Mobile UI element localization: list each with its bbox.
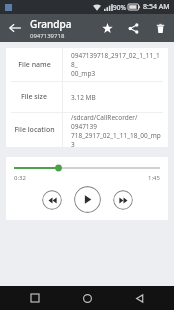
staticText: 0947139718 [30,32,65,40]
button[interactable]: Favorite [94,14,120,42]
staticText: 8:54 AM [143,2,170,12]
staticText: 0:32 [14,174,26,182]
button[interactable]: Back [0,14,30,42]
staticText: 1:45 [148,174,160,182]
staticText: File name [18,60,51,70]
button[interactable]: Play [74,186,101,213]
button[interactable]: Recents [18,286,52,310]
button[interactable]: Share [120,14,146,42]
staticText: Grandpa [30,17,72,31]
staticText: 90% [113,3,126,12]
button[interactable]: Seek bar [14,164,160,172]
button[interactable]: Rewind [42,190,62,210]
staticText: File size [21,92,47,102]
staticText: /sdcard/CallRecorder/0947139 718_2917_02… [71,113,162,147]
staticText: 0947139718_2917_02_1_11_18_ 00_mp3 [71,51,162,78]
button[interactable]: Delete [146,14,174,42]
staticText: File location [14,125,55,135]
button[interactable]: Home [70,286,104,310]
button[interactable]: Back [122,286,156,310]
staticText: 3.12 MB [71,93,96,102]
button[interactable]: Forward [113,190,133,210]
